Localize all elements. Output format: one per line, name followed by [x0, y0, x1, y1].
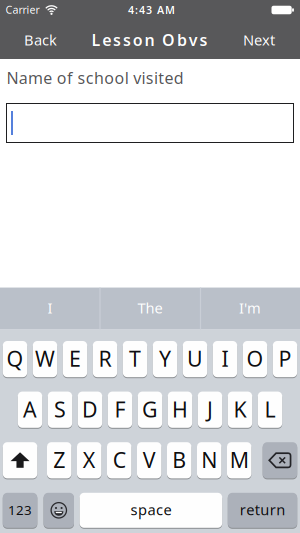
button[interactable]: T [123, 341, 147, 377]
staticText: S [54, 395, 66, 423]
staticText: Carrier [6, 2, 40, 17]
button[interactable]: P [273, 341, 297, 377]
staticText: K [233, 395, 246, 423]
staticText: W [35, 344, 55, 373]
button[interactable]: N [197, 442, 221, 478]
staticText: M [230, 445, 249, 474]
button[interactable]: I [213, 341, 237, 377]
staticText: Z [53, 445, 65, 474]
button[interactable]: V [137, 442, 161, 478]
button[interactable]: Y [153, 341, 177, 377]
staticText: space [130, 500, 171, 519]
staticText: X [83, 445, 96, 474]
button[interactable]: S [48, 392, 72, 428]
button[interactable]: Emoji [44, 493, 74, 528]
staticText: Name of school visited [7, 67, 184, 88]
staticText: V [143, 445, 156, 474]
button[interactable]: Delete [263, 442, 297, 478]
button[interactable]: A [18, 392, 42, 428]
button[interactable]: I'm [202, 288, 298, 330]
button[interactable]: U [183, 341, 207, 377]
staticText: F [114, 395, 125, 423]
button[interactable]: Back [15, 19, 65, 60]
button[interactable]: W [33, 341, 57, 377]
staticText: The [137, 298, 162, 318]
staticText: C [113, 445, 126, 474]
staticText: 123 [8, 501, 32, 519]
button[interactable]: O [243, 341, 267, 377]
staticText: B [172, 445, 186, 474]
button[interactable]: C [107, 442, 131, 478]
staticText: return [240, 500, 285, 519]
button[interactable]: return [228, 493, 297, 528]
button[interactable]: B [167, 442, 191, 478]
button[interactable]: E [63, 341, 87, 377]
staticText: Lesson Obvs [91, 29, 207, 50]
staticText: 4:43 AM [128, 3, 175, 17]
button[interactable]: Next [235, 19, 283, 60]
staticText: N [201, 445, 217, 474]
staticText: U [187, 344, 203, 373]
staticText: Q [6, 344, 23, 373]
button[interactable]: space [80, 493, 222, 528]
staticText: Back [24, 30, 57, 50]
button[interactable]: X [77, 442, 101, 478]
staticText: O [246, 344, 263, 373]
button[interactable]: Name of school visited [6, 103, 293, 142]
staticText: Y [159, 344, 171, 373]
staticText: R [98, 344, 111, 373]
button[interactable]: Q [3, 341, 27, 377]
button[interactable]: R [93, 341, 117, 377]
staticText: H [172, 395, 188, 423]
staticText: P [278, 344, 291, 373]
button[interactable]: L [258, 392, 282, 428]
staticText: Next [243, 30, 275, 50]
button[interactable]: Numbers [3, 493, 37, 528]
button[interactable]: G [138, 392, 162, 428]
button[interactable]: H [168, 392, 192, 428]
staticText: L [264, 395, 275, 423]
staticText: G [142, 395, 158, 423]
button[interactable]: K [228, 392, 252, 428]
staticText: A [23, 395, 37, 423]
button[interactable]: D [78, 392, 102, 428]
button[interactable]: M [227, 442, 251, 478]
button[interactable]: F [108, 392, 132, 428]
button[interactable]: Z [47, 442, 71, 478]
staticText: J [207, 395, 213, 423]
button[interactable]: Shift [3, 442, 37, 478]
button[interactable]: J [198, 392, 222, 428]
staticText: I'm [239, 298, 261, 318]
staticText: D [82, 395, 98, 423]
staticText: I [47, 298, 52, 318]
staticText: T [129, 344, 141, 373]
button[interactable]: I [2, 288, 98, 330]
button[interactable]: The [102, 288, 198, 330]
staticText: E [69, 344, 81, 373]
staticText: I [221, 344, 228, 373]
